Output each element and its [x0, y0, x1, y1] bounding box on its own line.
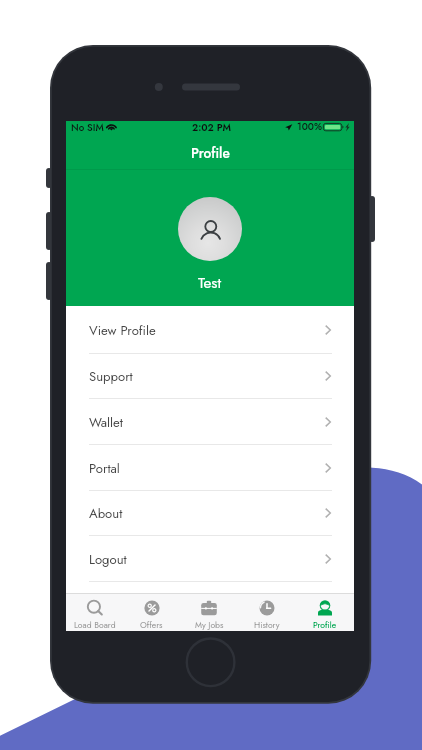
staticText: Profile: [313, 619, 337, 631]
button[interactable]: Portal: [66, 445, 354, 491]
staticText: View Profile: [89, 321, 156, 340]
staticText: 100%: [297, 120, 322, 134]
button[interactable]: View Profile: [66, 306, 354, 354]
staticText: Logout: [89, 550, 127, 569]
staticText: About: [89, 504, 123, 523]
staticText: Portal: [89, 459, 120, 478]
button[interactable]: Load Board: [66, 594, 123, 631]
staticText: My Jobs: [195, 619, 224, 631]
button[interactable]: My Jobs: [180, 594, 238, 631]
staticText: Support: [89, 367, 133, 386]
staticText: Test: [198, 272, 222, 294]
staticText: 2:02 PM: [192, 121, 232, 135]
staticText: Wallet: [89, 413, 123, 432]
staticText: Offers: [140, 619, 163, 631]
button[interactable]: Support: [66, 353, 354, 399]
button[interactable]: Profile: [296, 594, 354, 631]
staticText: History: [254, 619, 280, 631]
button[interactable]: History: [238, 594, 296, 631]
staticText: Load Board: [74, 619, 116, 631]
staticText: No SIM: [71, 121, 104, 135]
button[interactable]: Offers: [123, 594, 180, 631]
button[interactable]: About: [66, 490, 354, 536]
button[interactable]: Logout: [66, 536, 354, 582]
button[interactable]: Wallet: [66, 399, 354, 445]
staticText: Profile: [191, 143, 230, 163]
